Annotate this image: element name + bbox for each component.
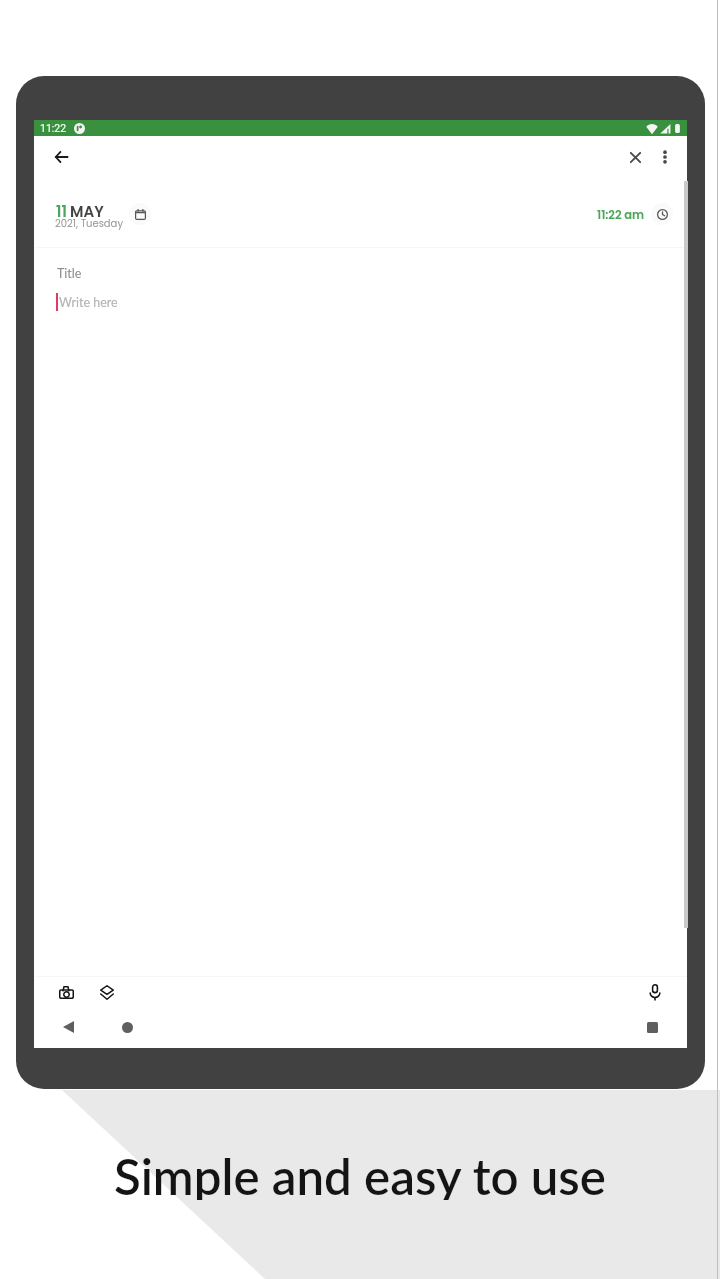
staticText: 11:22 am <box>597 207 645 221</box>
staticText: Title <box>57 266 82 281</box>
button[interactable]: Layers <box>87 972 127 1012</box>
button[interactable]: Pick date <box>129 203 151 225</box>
button[interactable]: Voice input <box>635 972 675 1012</box>
button[interactable]: More options <box>645 137 685 177</box>
staticText: MAY <box>70 201 104 222</box>
staticText: 2021, Tuesday <box>55 216 124 230</box>
button[interactable]: Home <box>107 1007 147 1047</box>
button[interactable]: Close <box>615 137 655 177</box>
button[interactable]: Recent apps <box>632 1007 672 1047</box>
button[interactable]: Write here <box>56 293 118 311</box>
button[interactable]: Back <box>48 1007 88 1047</box>
staticText: Write here <box>59 295 118 310</box>
button[interactable]: Back <box>41 137 81 177</box>
staticText: Simple and easy to use <box>114 1146 606 1200</box>
staticText: 11:22 <box>40 122 67 134</box>
staticText: 11 <box>56 201 67 222</box>
button[interactable]: Pick time <box>651 203 673 225</box>
button[interactable]: Title <box>57 266 82 281</box>
button[interactable]: Add photo <box>46 972 86 1012</box>
